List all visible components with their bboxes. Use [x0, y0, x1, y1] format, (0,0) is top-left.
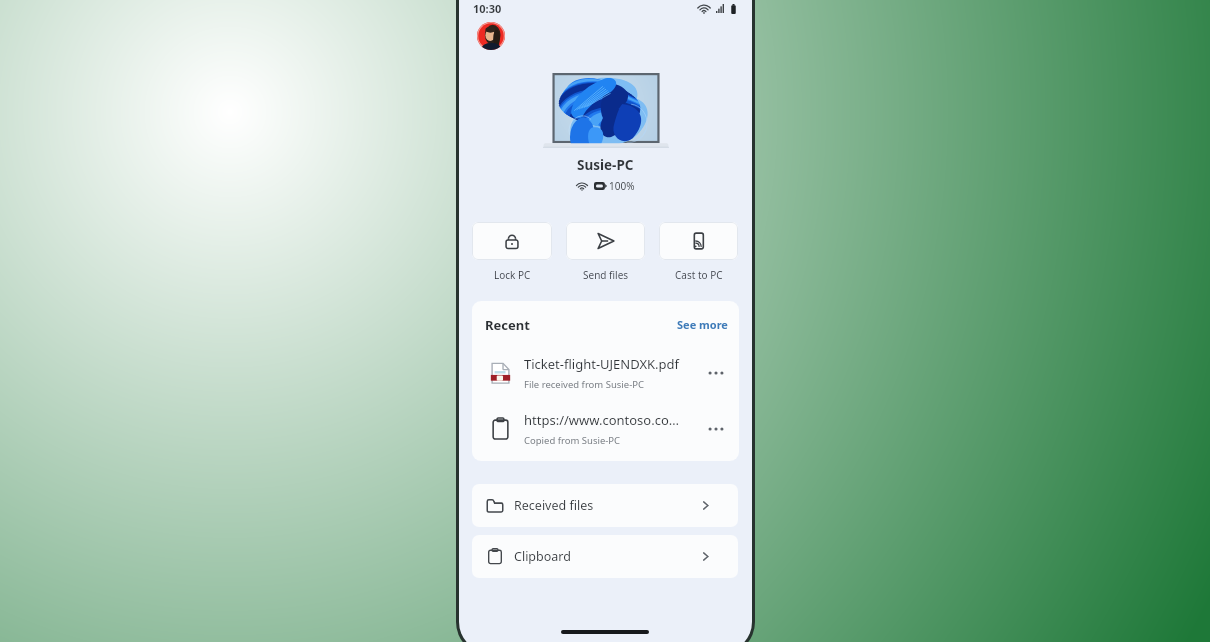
staticText: Ticket-flight-UJENDXK.pdf — [524, 355, 680, 373]
staticText: Send files — [583, 268, 629, 282]
staticText: Cast to PC — [675, 268, 723, 282]
button[interactable]: Profile — [477, 22, 505, 50]
button[interactable]: Lock PC — [472, 222, 552, 282]
button[interactable]: Cast to PC — [659, 222, 738, 282]
staticText: Received files — [514, 497, 594, 514]
button[interactable]: Clipboard — [472, 535, 738, 578]
button[interactable]: https://www.contoso.co… — [472, 411, 739, 447]
staticText: File received from Susie-PC — [524, 378, 644, 391]
staticText: Copied from Susie-PC — [524, 434, 621, 447]
button[interactable]: More options — [704, 361, 728, 385]
staticText: Susie-PC — [577, 156, 634, 174]
button[interactable]: Send files — [566, 222, 645, 282]
button[interactable]: Ticket-flight-UJENDXK.pdf — [472, 355, 739, 391]
button[interactable]: More options — [704, 417, 728, 441]
staticText: https://www.contoso.co… — [524, 411, 680, 429]
staticText: Lock PC — [494, 268, 531, 282]
staticText: 100% — [609, 179, 635, 193]
staticText: Recent — [485, 316, 530, 334]
button[interactable]: See more — [675, 315, 730, 334]
staticText: 10:30 — [473, 1, 502, 16]
staticText: Clipboard — [514, 548, 571, 565]
button[interactable]: Received files — [472, 484, 738, 527]
staticText: See more — [677, 317, 728, 332]
